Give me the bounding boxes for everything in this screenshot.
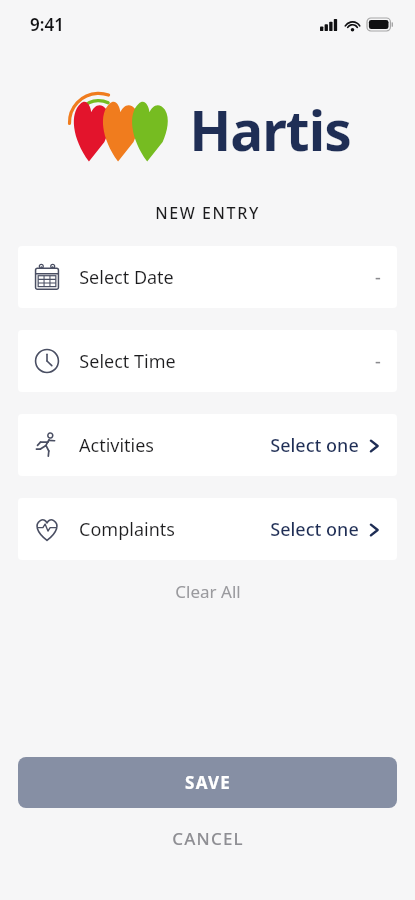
staticText: Hartis — [189, 92, 351, 167]
staticText: Activities — [79, 433, 154, 458]
button[interactable]: Select Date — [18, 246, 397, 308]
button[interactable]: Clear All — [0, 572, 415, 610]
staticText: Select Date — [79, 265, 174, 290]
button[interactable]: SAVE — [18, 757, 397, 808]
staticText: SAVE — [185, 771, 231, 794]
other: Hartis logo — [65, 93, 177, 163]
staticText: Complaints — [79, 517, 175, 542]
button[interactable]: Complaints — [18, 498, 397, 560]
staticText: - — [375, 265, 381, 290]
staticText: - — [375, 349, 381, 374]
button[interactable]: Activities — [18, 414, 397, 476]
staticText: Select one — [270, 517, 359, 542]
staticText: 9:41 — [30, 13, 64, 36]
staticText: Select one — [270, 433, 359, 458]
button[interactable]: Select Time — [18, 330, 397, 392]
button[interactable]: CANCEL — [0, 816, 415, 860]
staticText: Clear All — [175, 580, 241, 603]
staticText: Select Time — [79, 349, 176, 374]
staticText: NEW ENTRY — [155, 202, 260, 224]
staticText: CANCEL — [172, 827, 244, 850]
